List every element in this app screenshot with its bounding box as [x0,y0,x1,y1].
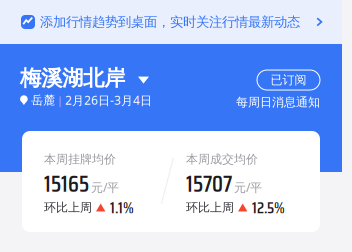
staticText: 岳麓 [31,93,55,107]
button[interactable]: 梅溪湖北岸 [20,65,149,91]
staticText: 本周挂牌均价 [44,152,116,167]
staticText: 本周成交均价 [186,152,258,167]
staticText: 添加行情趋势到桌面，实时关注行情最新动态 [40,14,300,30]
staticText: 梅溪湖北岸 [20,65,125,91]
staticText: 1.1% [110,195,134,220]
staticText: 环比上周 [44,200,92,215]
staticText: 环比上周 [186,200,234,215]
staticText: 12.5% [252,195,285,220]
staticText: | [57,93,63,107]
staticText: 元/平 [91,179,119,195]
staticText: 2月26日-3月4日 [65,92,152,108]
staticText: 每周日消息通知 [236,95,320,110]
staticText: 已订阅 [270,73,306,87]
button[interactable]: 已订阅 [257,70,320,90]
staticText: 15707 [186,166,232,202]
button[interactable]: 添加行情趋势到桌面，实时关注行情最新动态 [0,0,342,44]
staticText: 元/平 [234,179,262,195]
staticText: 15165 [44,166,89,202]
